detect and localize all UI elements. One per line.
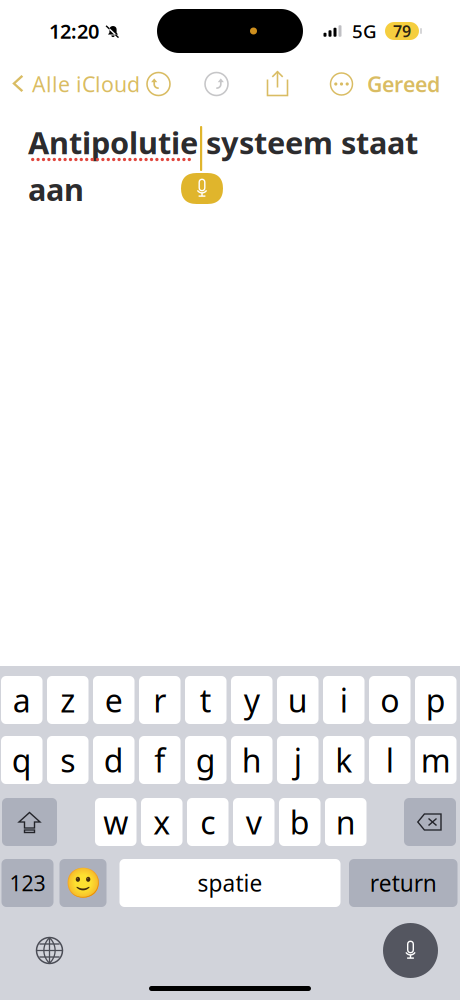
staticText: Antipolutie systeem staat: [28, 122, 418, 163]
staticText: m: [421, 739, 451, 781]
button[interactable]: a: [1, 676, 42, 724]
staticText: e: [105, 679, 123, 721]
staticText: d: [104, 739, 124, 781]
button[interactable]: Dictate: [181, 173, 223, 204]
button[interactable]: n: [325, 798, 366, 846]
staticText: f: [154, 739, 165, 781]
staticText: aan: [28, 169, 84, 209]
button[interactable]: w: [95, 798, 136, 846]
staticText: w: [103, 801, 128, 843]
button[interactable]: f: [139, 736, 180, 784]
button[interactable]: Undo: [142, 67, 175, 100]
staticText: Gereed: [367, 70, 440, 98]
button[interactable]: g: [185, 736, 226, 784]
button[interactable]: h: [231, 736, 272, 784]
staticText: 5G: [352, 19, 377, 43]
button[interactable]: Share: [261, 65, 294, 103]
button[interactable]: q: [1, 736, 42, 784]
staticText: 🙂: [64, 866, 101, 900]
staticText: n: [336, 801, 356, 843]
button[interactable]: m: [415, 736, 456, 784]
staticText: t: [200, 679, 212, 721]
button[interactable]: p: [415, 676, 456, 724]
button[interactable]: 123: [1, 859, 53, 907]
button[interactable]: Switch keyboard: [36, 937, 63, 964]
button[interactable]: o: [369, 676, 410, 724]
button[interactable]: k: [323, 736, 364, 784]
staticText: v: [246, 801, 262, 843]
button[interactable]: y: [231, 676, 272, 724]
staticText: j: [294, 739, 302, 781]
button[interactable]: r: [139, 676, 180, 724]
button[interactable]: d: [93, 736, 134, 784]
button[interactable]: spatie: [119, 859, 340, 907]
button[interactable]: s: [47, 736, 88, 784]
button[interactable]: e: [93, 676, 134, 724]
staticText: c: [200, 801, 215, 843]
staticText: g: [196, 739, 216, 781]
button[interactable]: c: [187, 798, 228, 846]
button[interactable]: Emoji: [59, 859, 106, 907]
button[interactable]: v: [233, 798, 274, 846]
staticText: h: [242, 739, 262, 781]
staticText: y: [244, 679, 260, 721]
button[interactable]: x: [141, 798, 182, 846]
staticText: spatie: [197, 868, 262, 898]
button[interactable]: j: [277, 736, 318, 784]
button[interactable]: i: [323, 676, 364, 724]
staticText: s: [60, 739, 75, 781]
staticText: b: [290, 801, 310, 843]
button[interactable]: Dictation: [383, 923, 438, 978]
staticText: Alle iCloud: [32, 70, 140, 98]
button[interactable]: Alle iCloud: [2, 64, 142, 104]
staticText: q: [12, 739, 32, 781]
button[interactable]: Shift: [2, 798, 57, 846]
staticText: l: [386, 739, 394, 781]
staticText: p: [426, 679, 446, 721]
staticText: z: [60, 679, 75, 721]
staticText: return: [370, 868, 437, 898]
staticText: k: [335, 739, 352, 781]
staticText: a: [13, 679, 31, 721]
button[interactable]: t: [185, 676, 226, 724]
staticText: 12:20: [49, 18, 99, 44]
button[interactable]: u: [277, 676, 318, 724]
staticText: x: [153, 801, 170, 843]
staticText: o: [380, 679, 399, 721]
staticText: 123: [9, 869, 45, 897]
staticText: i: [340, 679, 348, 721]
staticText: 79: [393, 20, 411, 42]
button[interactable]: Backspace: [404, 798, 456, 846]
button[interactable]: z: [47, 676, 88, 724]
button[interactable]: b: [279, 798, 320, 846]
button[interactable]: Redo: [200, 67, 233, 100]
button[interactable]: More: [324, 66, 359, 101]
button[interactable]: l: [369, 736, 410, 784]
staticText: r: [153, 679, 166, 721]
button[interactable]: Gereed: [367, 62, 458, 106]
staticText: u: [288, 679, 308, 721]
button[interactable]: return: [349, 859, 457, 907]
